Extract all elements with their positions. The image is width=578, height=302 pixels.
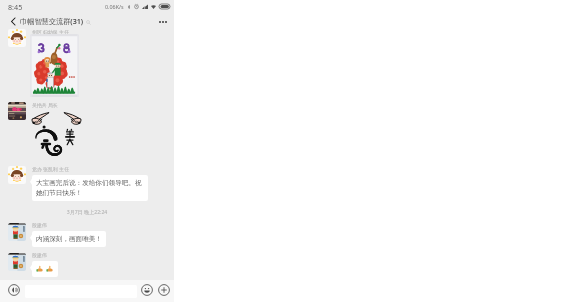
staticText: 州区 妇幼保 主任 xyxy=(32,29,69,36)
staticText: 党办 张凯利 主任 xyxy=(32,166,69,173)
button[interactable] xyxy=(8,29,26,47)
staticText: 0.06K/s xyxy=(105,3,124,10)
staticText: 3月7日 晚上22:24 xyxy=(0,209,174,216)
button[interactable] xyxy=(32,261,58,277)
button[interactable] xyxy=(8,253,26,271)
staticText: 殷建伟 xyxy=(32,222,47,228)
button[interactable] xyxy=(30,111,83,156)
button[interactable]: Back xyxy=(4,13,21,30)
staticText: 大宝画完后说：发给你们领导吧。祝她们节日快乐！ xyxy=(36,179,144,197)
button[interactable]: More functions xyxy=(158,284,170,296)
button[interactable] xyxy=(8,166,26,184)
button[interactable]: Emoji xyxy=(141,284,153,296)
button[interactable]: Voice input xyxy=(8,284,20,296)
button[interactable]: 内涵深刻，画面唯美！ xyxy=(32,231,106,247)
button[interactable] xyxy=(30,34,79,97)
button[interactable] xyxy=(8,223,26,241)
button[interactable]: More options xyxy=(154,13,171,30)
staticText: 内涵深刻，画面唯美！ xyxy=(36,235,102,243)
staticText: 殷建伟 xyxy=(32,252,47,258)
staticText: 吴艳兵 局长 xyxy=(32,102,58,109)
button[interactable]: 大宝画完后说：发给你们领导吧。祝她们节日快乐！ xyxy=(32,175,148,201)
staticText: 巾帼智慧交流群(31) xyxy=(20,16,84,26)
staticText: 8:45 xyxy=(8,2,23,12)
button[interactable] xyxy=(8,102,26,120)
